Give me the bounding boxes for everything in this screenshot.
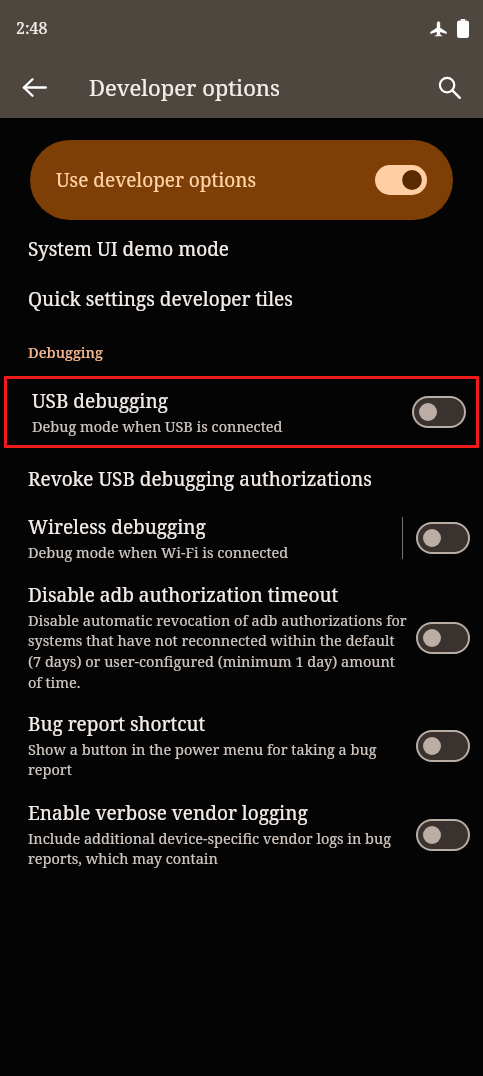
button[interactable]: Wireless debugging	[0, 506, 483, 570]
staticText: Show a button in the power menu for taki…	[28, 739, 409, 780]
staticText: Revoke USB debugging authorizations	[28, 466, 372, 492]
staticText: Enable verbose vendor logging	[28, 800, 308, 826]
button[interactable]: Disable adb authorization timeout	[417, 623, 469, 653]
staticText: Disable automatic revocation of adb auth…	[28, 610, 409, 693]
button[interactable]: Disable adb authorization timeout	[0, 576, 483, 699]
staticText: Use developer options	[56, 167, 375, 193]
staticText: System UI demo mode	[28, 236, 229, 262]
button[interactable]: Revoke USB debugging authorizations	[0, 456, 483, 502]
button[interactable]: USB debugging	[4, 376, 479, 448]
button[interactable]: Bug report shortcut	[417, 731, 469, 761]
button[interactable]: Use developer options	[375, 165, 427, 195]
button[interactable]: USB debugging	[413, 397, 465, 427]
staticText: Include additional device-specific vendo…	[28, 828, 409, 869]
button[interactable]: Use developer options	[30, 140, 453, 220]
staticText: Wireless debugging	[28, 514, 206, 540]
staticText: Disable adb authorization timeout	[28, 582, 339, 608]
button[interactable]: Enable verbose vendor logging	[417, 820, 469, 850]
staticText: Debugging	[28, 342, 103, 362]
button[interactable]: Bug report shortcut	[0, 705, 483, 786]
button[interactable]: Wireless debugging	[417, 523, 469, 553]
staticText: Debug mode when USB is connected	[32, 416, 283, 436]
button[interactable]: Enable verbose vendor logging	[0, 796, 483, 873]
staticText: Debug mode when Wi-Fi is connected	[28, 542, 289, 562]
button[interactable]: Search	[425, 63, 473, 111]
staticText: Quick settings developer tiles	[28, 286, 293, 312]
button[interactable]: Back	[10, 63, 58, 111]
staticText: Developer options	[89, 72, 280, 102]
staticText: 2:48	[16, 17, 48, 39]
staticText: USB debugging	[32, 388, 168, 414]
button[interactable]: System UI demo mode	[0, 226, 483, 272]
staticText: Bug report shortcut	[28, 711, 206, 737]
button[interactable]: Quick settings developer tiles	[0, 272, 483, 326]
